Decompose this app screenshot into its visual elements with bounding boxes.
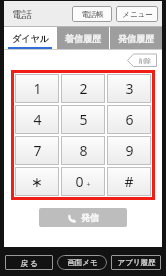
staticText: 戻 る: [20, 258, 38, 268]
staticText: #: [124, 172, 134, 191]
staticText: 7: [33, 141, 42, 160]
button[interactable]: 8: [61, 136, 105, 165]
staticText: 1: [33, 79, 42, 98]
button[interactable]: 着信履歴: [57, 27, 109, 49]
staticText: アプリ履歴: [117, 258, 156, 267]
button[interactable]: 5: [61, 105, 105, 134]
button[interactable]: #: [107, 167, 151, 196]
staticText: 発信: [81, 212, 99, 223]
staticText: メニュー: [122, 10, 153, 19]
button[interactable]: ダイヤル: [4, 27, 56, 49]
staticText: 削除: [139, 57, 151, 65]
button[interactable]: 発信履歴: [110, 27, 162, 49]
button[interactable]: 9: [107, 136, 151, 165]
staticText: 発信履歴: [118, 33, 154, 44]
staticText: ∗: [31, 174, 43, 190]
staticText: 8: [79, 141, 88, 160]
staticText: 電話: [12, 8, 32, 21]
staticText: ダイヤル: [12, 33, 49, 44]
staticText: 着信履歴: [65, 33, 101, 44]
staticText: 画面メモ: [67, 258, 98, 267]
button[interactable]: 1: [15, 74, 59, 103]
button[interactable]: 発信: [39, 208, 127, 227]
button[interactable]: 6: [107, 105, 151, 134]
button[interactable]: 電話帳: [72, 6, 112, 22]
staticText: 3: [125, 79, 134, 98]
button[interactable]: 4: [15, 105, 59, 134]
staticText: 0: [75, 172, 84, 191]
button[interactable]: メニュー: [116, 6, 158, 22]
staticText: 4: [33, 110, 42, 129]
staticText: 電話帳: [81, 10, 104, 19]
button[interactable]: 戻 る: [5, 255, 53, 270]
button[interactable]: 削除: [127, 54, 157, 67]
staticText: 9: [125, 141, 134, 160]
staticText: 2: [79, 79, 88, 98]
staticText: 6: [125, 110, 134, 129]
button[interactable]: ∗: [15, 167, 59, 196]
staticText: +: [86, 180, 91, 190]
staticText: 5: [79, 110, 88, 129]
button[interactable]: 画面メモ: [57, 255, 107, 270]
button[interactable]: 3: [107, 74, 151, 103]
button[interactable]: 0: [61, 167, 105, 196]
button[interactable]: アプリ履歴: [111, 255, 161, 270]
button[interactable]: 7: [15, 136, 59, 165]
button[interactable]: 2: [61, 74, 105, 103]
